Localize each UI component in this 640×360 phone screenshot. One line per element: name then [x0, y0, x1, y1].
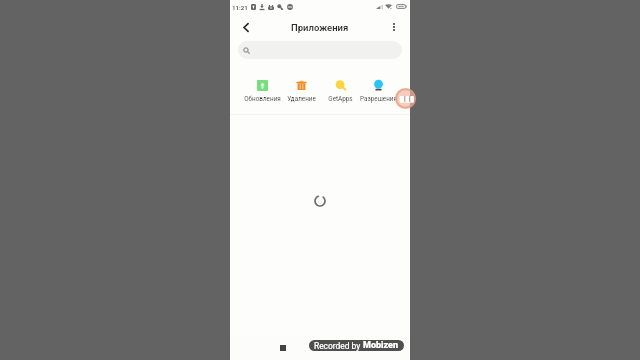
button[interactable]: Back [238, 20, 253, 35]
staticText: GetApps [328, 95, 353, 102]
button[interactable]: Recents [276, 341, 290, 355]
button[interactable]: GetApps [321, 80, 360, 102]
staticText: 11:21 [232, 4, 248, 11]
button[interactable]: Удаление [282, 80, 321, 102]
staticText: Удаление [287, 95, 316, 102]
staticText: Recorded by [314, 341, 363, 351]
button[interactable]: More options [387, 20, 401, 34]
staticText: Приложения [291, 22, 349, 33]
staticText: Обновления [244, 95, 281, 102]
staticText: Mobizen [363, 340, 399, 351]
staticText: Разрешения [360, 95, 397, 102]
button[interactable] [238, 41, 402, 59]
button[interactable]: Разрешения [360, 80, 397, 102]
button[interactable]: Обновления [243, 80, 282, 102]
